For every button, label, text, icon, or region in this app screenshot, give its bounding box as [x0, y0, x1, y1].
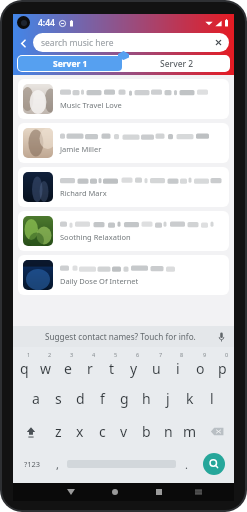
button[interactable]: Space: [67, 457, 176, 471]
staticText: w: [40, 359, 52, 378]
button[interactable]: search music here: [33, 33, 229, 52]
button[interactable]: Home: [93, 483, 137, 501]
staticText: e: [64, 359, 72, 378]
button[interactable]: Back: [49, 483, 93, 501]
button[interactable]: Back: [15, 35, 31, 51]
button[interactable]: Suggest contact names? Touch for info.: [13, 326, 234, 347]
button[interactable]: Music Travel Love: [18, 79, 229, 119]
button[interactable]: 2: [35, 347, 57, 382]
staticText: 3: [70, 351, 74, 358]
staticText: p: [218, 359, 227, 378]
staticText: g: [120, 389, 129, 408]
button[interactable]: f: [91, 382, 113, 415]
button[interactable]: b: [135, 415, 157, 448]
staticText: c: [99, 422, 106, 441]
button[interactable]: g: [113, 382, 135, 415]
staticText: Jamie Miller: [60, 144, 102, 154]
staticText: .: [185, 457, 188, 472]
button[interactable]: z: [47, 415, 69, 448]
button[interactable]: Server 2: [123, 55, 230, 72]
staticText: s: [55, 389, 62, 408]
button[interactable]: l: [201, 382, 223, 415]
staticText: b: [142, 422, 151, 441]
staticText: k: [186, 389, 194, 408]
button[interactable]: v: [113, 415, 135, 448]
staticText: search music here: [41, 37, 213, 49]
staticText: Suggest contact names? Touch for info.: [45, 331, 196, 342]
staticText: t: [109, 359, 115, 378]
button[interactable]: ?123: [16, 448, 48, 480]
button[interactable]: a: [24, 382, 47, 415]
staticText: 4:44: [38, 17, 55, 29]
staticText: 1: [27, 351, 31, 358]
button[interactable]: Jamie Miller: [18, 123, 229, 163]
staticText: i: [176, 359, 180, 378]
button[interactable]: 3: [57, 347, 79, 382]
staticText: f: [100, 389, 105, 408]
button[interactable]: 9: [189, 347, 211, 382]
button[interactable]: 6: [123, 347, 145, 382]
staticText: l: [210, 389, 214, 408]
button[interactable]: n: [157, 415, 179, 448]
staticText: n: [164, 422, 173, 441]
button[interactable]: Shift: [15, 415, 47, 448]
button[interactable]: m: [179, 415, 201, 448]
staticText: 5: [114, 351, 118, 358]
button[interactable]: h: [135, 382, 157, 415]
button[interactable]: 5: [101, 347, 123, 382]
button[interactable]: 4: [79, 347, 101, 382]
button[interactable]: Search: [203, 453, 225, 475]
staticText: a: [32, 389, 40, 408]
button[interactable]: ,: [48, 448, 67, 480]
staticText: 0: [225, 351, 229, 358]
staticText: j: [166, 389, 170, 408]
staticText: Music Travel Love: [60, 100, 122, 110]
staticText: 6: [136, 351, 140, 358]
staticText: h: [142, 389, 151, 408]
staticText: 2: [48, 351, 52, 358]
button[interactable]: c: [91, 415, 113, 448]
button[interactable]: Richard Marx: [18, 167, 229, 207]
staticText: Soothing Relaxation: [60, 232, 131, 242]
button[interactable]: 7: [145, 347, 167, 382]
button[interactable]: 8: [167, 347, 189, 382]
staticText: ,: [56, 457, 59, 472]
button[interactable]: d: [69, 382, 91, 415]
button[interactable]: Voice input: [217, 331, 226, 343]
staticText: Richard Marx: [60, 188, 107, 198]
staticText: x: [76, 422, 84, 441]
button[interactable]: k: [179, 382, 201, 415]
staticText: v: [120, 422, 128, 441]
staticText: z: [55, 422, 62, 441]
button[interactable]: x: [69, 415, 91, 448]
staticText: u: [152, 359, 161, 378]
staticText: m: [183, 422, 197, 441]
button[interactable]: Backspace: [201, 415, 232, 448]
button[interactable]: Soothing Relaxation: [18, 211, 229, 251]
staticText: Server 1: [53, 58, 88, 70]
staticText: Server 2: [160, 58, 194, 70]
staticText: r: [87, 359, 93, 378]
button[interactable]: j: [157, 382, 179, 415]
staticText: ?123: [24, 459, 41, 469]
staticText: 7: [159, 351, 163, 358]
staticText: 8: [180, 351, 184, 358]
button[interactable]: 1: [14, 347, 35, 382]
button[interactable]: Recents: [137, 483, 181, 501]
button[interactable]: .: [176, 448, 196, 480]
button[interactable]: Menu: [181, 483, 216, 501]
staticText: 4: [92, 351, 96, 358]
staticText: Daily Dose Of Internet: [60, 276, 139, 286]
button[interactable]: Clear: [213, 37, 224, 48]
staticText: o: [196, 359, 205, 378]
button[interactable]: 0: [211, 347, 233, 382]
staticText: q: [20, 359, 29, 378]
staticText: y: [130, 359, 138, 378]
button[interactable]: Daily Dose Of Internet: [18, 255, 229, 295]
staticText: d: [76, 389, 85, 408]
button[interactable]: s: [47, 382, 69, 415]
button[interactable]: Server 1: [18, 56, 122, 71]
staticText: 9: [203, 351, 207, 358]
